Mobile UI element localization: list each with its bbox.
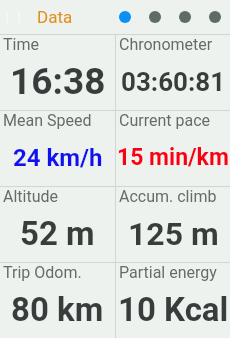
staticText: Current pace	[119, 111, 210, 130]
button[interactable]: Partial energy	[116, 263, 230, 338]
staticText: Time	[3, 35, 39, 54]
staticText: Accum. climb	[119, 187, 217, 206]
staticText: Trip Odom.	[3, 263, 82, 282]
button[interactable]: Altitude	[0, 187, 115, 262]
staticText: 52 m	[20, 214, 95, 253]
staticText: 15 min/km	[117, 144, 229, 171]
staticText: Data	[37, 7, 73, 27]
staticText: Partial energy	[119, 263, 217, 282]
staticText: 16:38	[10, 60, 106, 103]
button[interactable]: Page 2	[149, 11, 161, 23]
staticText: 03:60:81	[121, 67, 226, 97]
staticText: 10 Kcal	[118, 290, 229, 329]
staticText: Chronometer	[119, 35, 213, 54]
staticText: 24 km/h	[13, 144, 103, 172]
button[interactable]: Page 3	[179, 11, 191, 23]
button[interactable]: Current pace	[116, 111, 230, 186]
button[interactable]: Trip Odom.	[0, 263, 115, 338]
staticText: Mean Speed	[3, 111, 92, 130]
staticText: Altitude	[3, 187, 59, 206]
button[interactable]: Page 1	[119, 11, 131, 23]
button[interactable]: Mean Speed	[0, 111, 115, 186]
button[interactable]: Accum. climb	[116, 187, 230, 262]
staticText: 80 km	[11, 290, 104, 329]
button[interactable]: Time	[0, 35, 115, 110]
staticText: 125 m	[128, 215, 219, 253]
button[interactable]: Chronometer	[116, 35, 230, 110]
button[interactable]: Page 4	[209, 11, 221, 23]
